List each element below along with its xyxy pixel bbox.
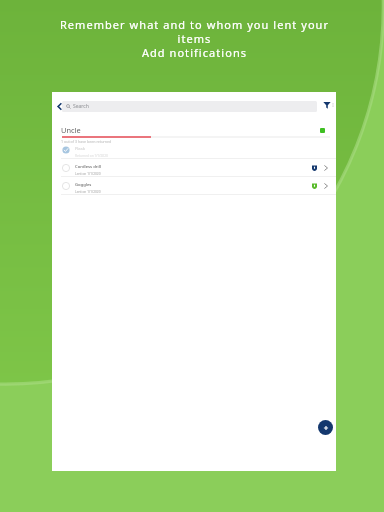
staticText: Lent on 1/1/2020 [75,172,101,176]
staticText: Remember what and to whom you lent your … [56,17,333,60]
button[interactable]: Back [54,101,64,111]
button[interactable]: Add item [318,420,333,435]
staticText: Goggles [75,182,92,188]
button[interactable]: Cordless drill [52,159,336,177]
staticText: Cordless drill [75,164,101,170]
button[interactable]: Flask [52,141,336,159]
staticText: Returned on 1/1/2020 [75,154,108,158]
button[interactable]: More options [329,101,336,108]
staticText: Search [73,103,89,110]
staticText: 1 out of 3 have been returned [61,139,112,144]
staticText: Uncle [61,125,81,135]
staticText: Flask [75,146,86,152]
button[interactable]: Filter [321,99,332,110]
button[interactable]: Goggles [52,177,336,195]
staticText: Lent on 1/1/2020 [75,190,101,194]
button[interactable]: Search [62,101,317,112]
